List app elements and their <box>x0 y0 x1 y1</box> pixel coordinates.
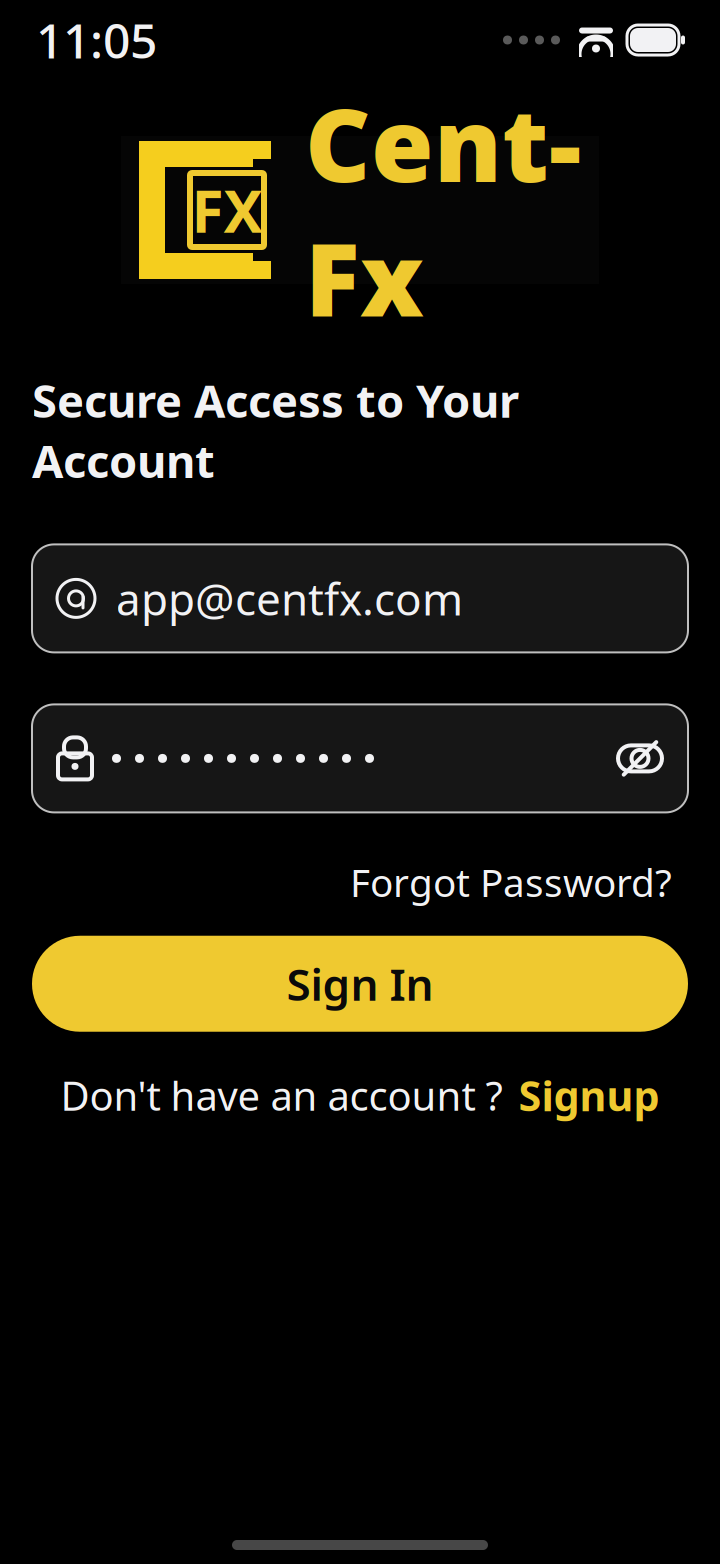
button[interactable]: app@centfx.com <box>32 544 688 652</box>
staticText: Sign In <box>286 954 433 1013</box>
staticText: 11:05 <box>36 8 157 72</box>
staticText: app@centfx.com <box>116 569 463 628</box>
staticText: Don't have an account ? <box>60 1069 502 1122</box>
button[interactable]: Sign In <box>32 936 688 1032</box>
staticText: CentFx <box>305 75 581 344</box>
button[interactable]: Signup <box>518 1068 659 1123</box>
staticText: Signup <box>518 1068 659 1123</box>
staticText: FX <box>191 171 262 249</box>
button[interactable] <box>32 704 688 812</box>
button[interactable]: Forgot Password? <box>350 850 672 914</box>
staticText: Secure Access to Your Account <box>32 370 519 490</box>
staticText: Forgot Password? <box>350 856 672 908</box>
